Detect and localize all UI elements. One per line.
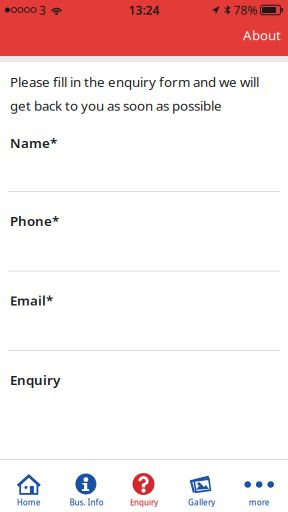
staticText: Name* xyxy=(10,134,57,152)
button[interactable]: more xyxy=(230,460,288,512)
button[interactable]: Enquiry xyxy=(0,351,288,459)
staticText: Email* xyxy=(10,291,53,309)
button[interactable]: About xyxy=(233,21,288,55)
button[interactable]: Email* xyxy=(0,271,288,351)
staticText: Bus. Info xyxy=(69,497,103,508)
staticText: more xyxy=(249,497,270,508)
staticText: Home xyxy=(17,497,41,508)
button[interactable]: Home xyxy=(0,460,58,512)
button[interactable]: Bus. Info xyxy=(58,460,115,512)
staticText: 3 xyxy=(39,2,46,18)
button[interactable]: Enquiry xyxy=(115,460,173,512)
staticText: 13:24 xyxy=(128,2,159,18)
staticText: Gallery xyxy=(188,497,215,508)
staticText: Enquiry xyxy=(130,497,158,508)
staticText: About xyxy=(243,26,281,44)
button[interactable]: Phone* xyxy=(0,192,288,271)
staticText: Enquiry xyxy=(10,371,60,389)
button[interactable]: Name* xyxy=(0,132,288,192)
staticText: Please fill in the enquiry form and we w… xyxy=(10,73,259,114)
staticText: 78% xyxy=(233,2,257,18)
staticText: Phone* xyxy=(10,212,59,230)
button[interactable]: Gallery xyxy=(173,460,230,512)
